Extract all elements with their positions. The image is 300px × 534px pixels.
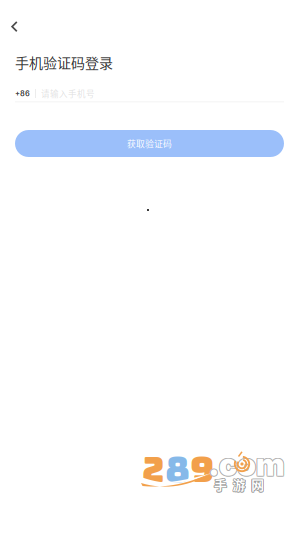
staticText: 获取验证码 — [127, 137, 172, 150]
staticText: 9 — [190, 446, 214, 493]
button[interactable]: 返回 — [0, 0, 33, 42]
staticText: 手机验证码登录 — [15, 52, 113, 72]
staticText: .com — [209, 446, 285, 483]
staticText: 2 — [142, 446, 165, 493]
staticText: 手游网 — [215, 474, 265, 493]
staticText: 手游网 — [215, 475, 265, 493]
staticText: 手游网 — [213, 475, 263, 493]
staticText: 手游网 — [214, 475, 264, 493]
staticText: 手游网 — [214, 474, 264, 493]
staticText: 手游网 — [214, 476, 264, 494]
staticText: 请输入手机号 — [41, 87, 95, 100]
staticText: 8 — [165, 446, 190, 493]
staticText: .com — [209, 445, 285, 482]
staticText: .com — [210, 446, 286, 483]
staticText: +86 — [15, 89, 30, 98]
staticText: .com — [208, 445, 284, 482]
staticText: 手游网 — [213, 474, 263, 493]
staticText: .com — [208, 446, 284, 483]
staticText: 手游网 — [213, 476, 263, 494]
staticText: .com — [209, 447, 285, 484]
staticText: .com — [210, 447, 286, 484]
staticText: 手游网 — [215, 476, 265, 494]
staticText: .com — [210, 445, 286, 482]
staticText: .com — [208, 447, 284, 484]
button[interactable]: 获取验证码 — [15, 130, 284, 157]
